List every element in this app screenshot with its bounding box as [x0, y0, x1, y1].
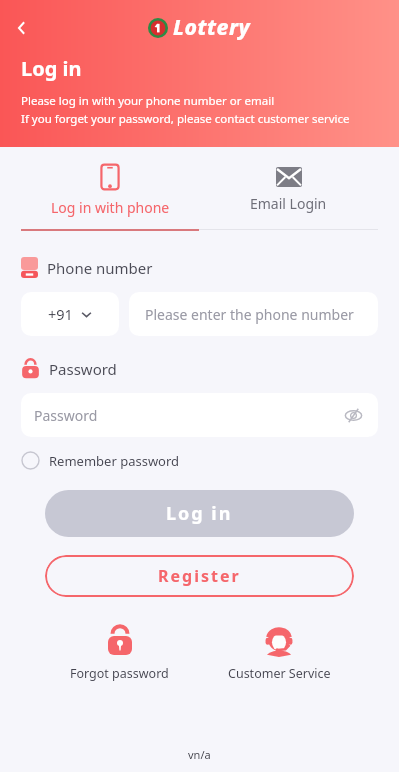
button[interactable]: Forgot password — [40, 625, 199, 682]
staticText: Lottery — [173, 13, 251, 42]
staticText: Password — [34, 406, 98, 425]
staticText: Please enter the phone number — [145, 305, 354, 324]
button[interactable]: +91 — [21, 292, 119, 336]
staticText: +91 — [48, 304, 73, 324]
staticText: Customer Service — [228, 665, 331, 682]
staticText: Remember password — [49, 452, 180, 470]
staticText: Please log in with your phone number or … — [21, 93, 275, 109]
button[interactable]: Password — [21, 393, 378, 437]
button[interactable]: Customer Service — [199, 625, 359, 682]
staticText: Password — [49, 359, 117, 379]
staticText: Forgot password — [70, 665, 169, 682]
button[interactable]: Email Login — [199, 157, 378, 219]
staticText: Email Login — [250, 194, 327, 213]
staticText: Log in with phone — [51, 198, 170, 217]
staticText: vn/a — [188, 747, 211, 762]
button[interactable]: Register — [45, 555, 354, 597]
staticText: Log in — [166, 501, 233, 526]
button[interactable]: Please enter the phone number — [129, 292, 378, 336]
button[interactable]: Log in — [45, 490, 354, 537]
staticText: If you forget your password, please cont… — [21, 111, 350, 127]
staticText: Log in — [21, 55, 82, 82]
button[interactable]: Back — [4, 10, 40, 46]
button[interactable]: Remember password — [21, 451, 180, 470]
staticText: Phone number — [47, 258, 153, 278]
staticText: Register — [158, 565, 241, 587]
button[interactable]: Show password — [341, 403, 365, 427]
button[interactable]: Log in with phone — [21, 157, 199, 223]
